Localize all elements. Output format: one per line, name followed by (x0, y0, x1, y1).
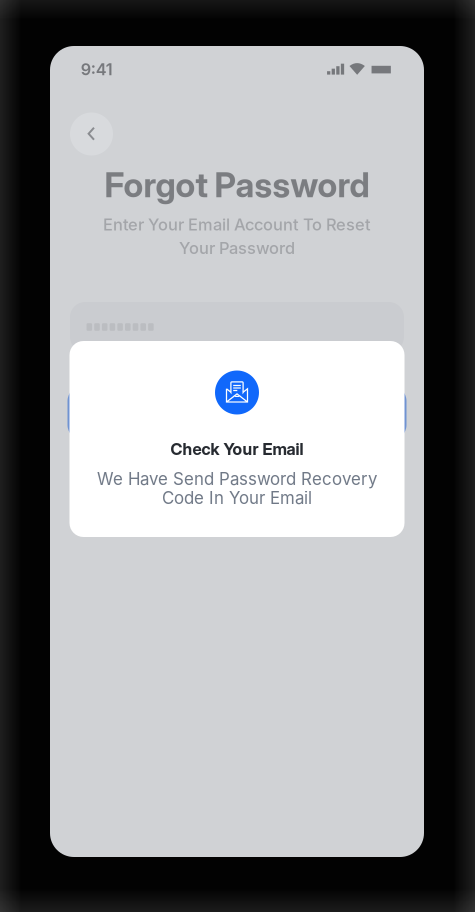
staticText: 9:41 (81, 59, 113, 79)
button[interactable]: Back (70, 112, 113, 155)
staticText: Enter Your Email Account To Reset (103, 215, 371, 234)
staticText: Your Password (179, 238, 295, 258)
button[interactable]: Send (67, 386, 406, 440)
staticText: Code In Your Email (162, 488, 312, 508)
button[interactable]: Email Address (70, 302, 404, 352)
staticText: Forgot Password (104, 164, 369, 205)
staticText: Check Your Email (170, 439, 303, 459)
staticText: We Have Send Password Recovery (97, 469, 377, 489)
